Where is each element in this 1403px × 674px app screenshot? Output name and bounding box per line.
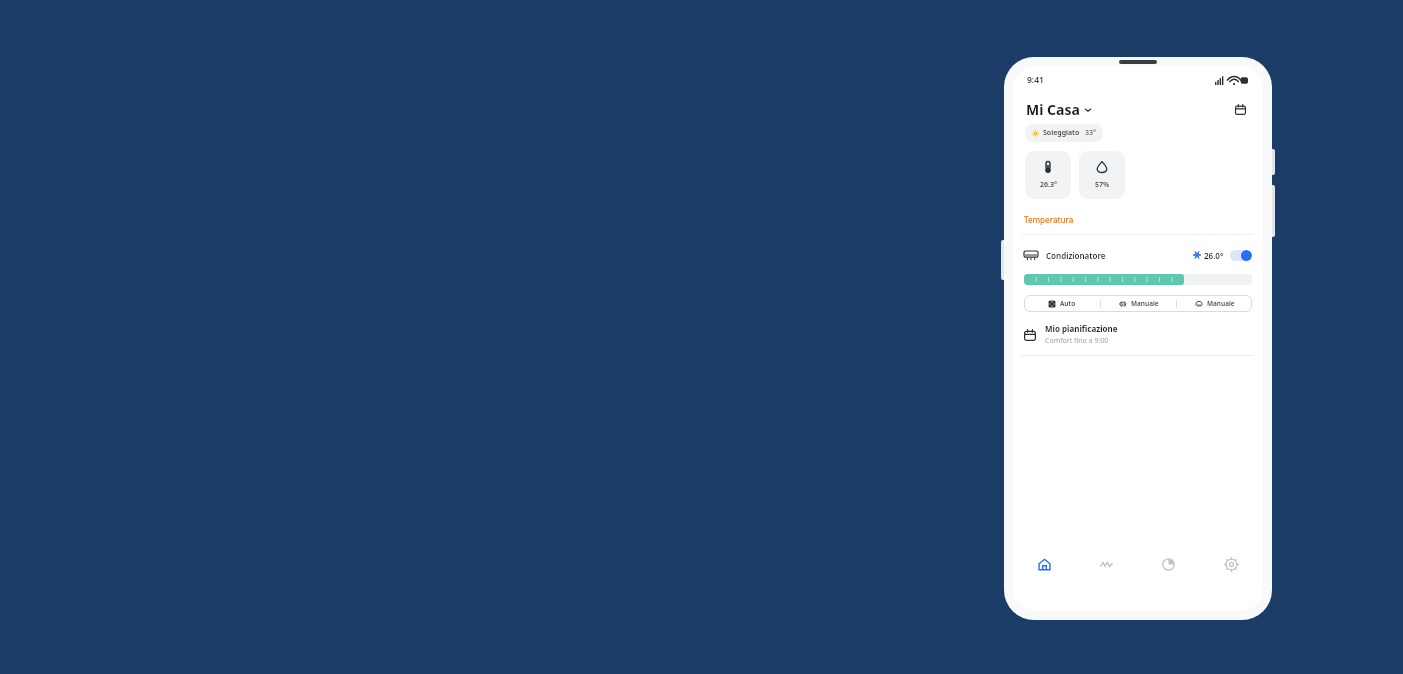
button[interactable]: Mio pianificazione [1024, 323, 1252, 346]
staticText: Manuale [1207, 299, 1235, 308]
staticText: Comfort fino a 9:00 [1045, 336, 1109, 346]
staticText: Manuale [1131, 299, 1159, 308]
button[interactable]: Power toggle [1230, 250, 1252, 261]
button[interactable] [1024, 274, 1252, 285]
button[interactable]: Mi Casa [1026, 100, 1092, 119]
button[interactable]: Auto [1024, 295, 1100, 312]
staticText: Temperatura [1024, 214, 1074, 225]
staticText: 57% [1095, 180, 1110, 190]
staticText: 33° [1085, 128, 1096, 138]
button[interactable]: Activity [1075, 549, 1137, 579]
button[interactable]: Condizionatore [1024, 245, 1252, 265]
staticText: Mi Casa [1026, 100, 1080, 119]
button[interactable]: 57% [1079, 151, 1125, 199]
button[interactable]: Calendar [1230, 99, 1250, 119]
button[interactable]: 26.3° [1025, 151, 1071, 199]
staticText: 26.0° [1204, 250, 1224, 261]
button[interactable]: Settings [1200, 549, 1263, 579]
staticText: Mio pianificazione [1045, 323, 1118, 334]
staticText: 26.3° [1040, 180, 1057, 190]
button[interactable]: Manuale [1101, 295, 1176, 312]
button[interactable]: Stats [1137, 549, 1200, 579]
staticText: 9:41 [1027, 74, 1044, 86]
button[interactable]: Home [1013, 549, 1075, 579]
staticText: Soleggiato [1043, 128, 1080, 138]
button[interactable]: Soleggiato [1025, 124, 1103, 142]
staticText: Condizionatore [1046, 250, 1106, 261]
button[interactable]: Manuale [1177, 295, 1252, 312]
staticText: Auto [1060, 299, 1076, 308]
